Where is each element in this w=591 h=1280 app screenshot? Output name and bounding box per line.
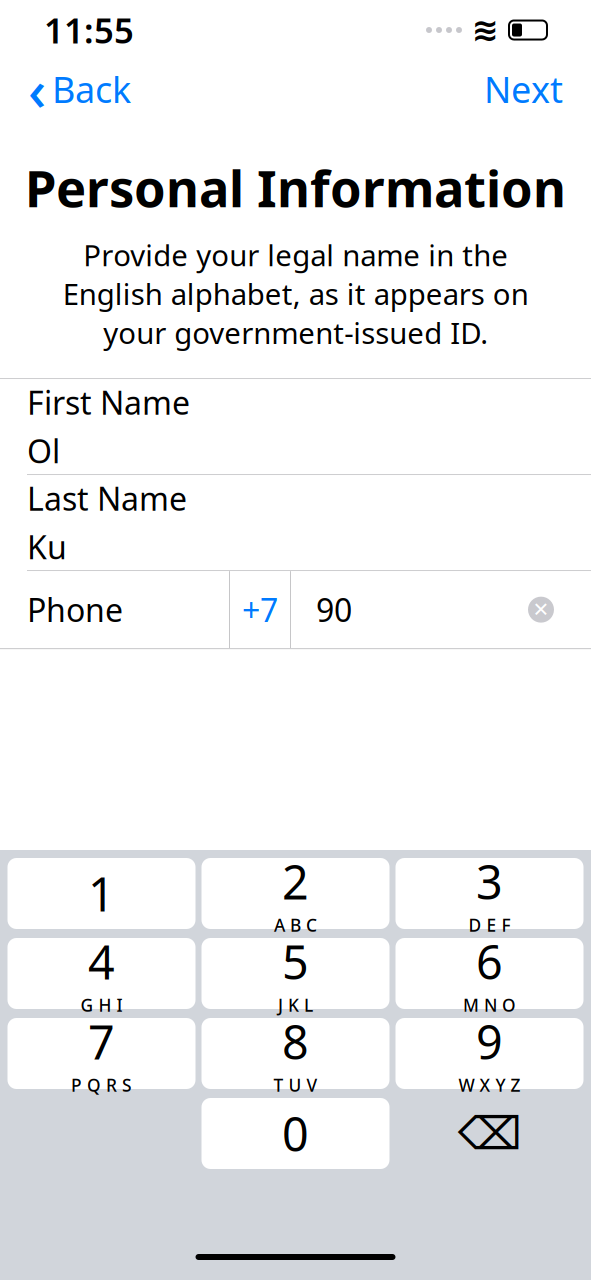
staticText: 5: [282, 930, 309, 992]
staticText: 1: [88, 862, 115, 924]
staticText: Ol: [27, 430, 60, 472]
staticText: T U V: [273, 1073, 317, 1096]
button[interactable]: 7: [7, 1018, 195, 1089]
staticText: 3: [476, 850, 503, 912]
button[interactable]: 8: [201, 1018, 389, 1089]
button[interactable]: 3: [395, 858, 583, 929]
staticText: Ku: [27, 526, 67, 568]
button[interactable]: 0: [201, 1098, 389, 1169]
staticText: M N O: [463, 993, 516, 1016]
staticText: Personal Information: [25, 154, 566, 221]
staticText: ≋: [472, 12, 499, 48]
button[interactable]: 1: [7, 858, 195, 929]
button[interactable]: ‹: [12, 46, 147, 132]
staticText: G H I: [80, 993, 122, 1016]
button[interactable]: Delete: [395, 1098, 583, 1169]
staticText: 90: [316, 588, 352, 631]
staticText: Last Name: [27, 477, 187, 520]
staticText: 9: [476, 1010, 503, 1072]
staticText: P Q R S: [71, 1073, 132, 1096]
staticText: Back: [52, 65, 131, 113]
button[interactable]: Last Name: [0, 475, 591, 570]
staticText: A B C: [274, 913, 317, 936]
staticText: 0: [282, 1102, 309, 1164]
button[interactable]: 5: [201, 938, 389, 1009]
button[interactable]: First Name: [0, 379, 591, 474]
staticText: 8: [282, 1010, 309, 1072]
button[interactable]: +7: [230, 571, 290, 648]
button[interactable]: 4: [7, 938, 195, 1009]
staticText: W X Y Z: [458, 1073, 520, 1096]
staticText: +7: [242, 588, 278, 631]
staticText: First Name: [27, 381, 190, 424]
staticText: Provide your legal name in the English a…: [62, 235, 528, 352]
staticText: ⌫: [457, 1108, 521, 1159]
staticText: 11:55: [44, 7, 134, 53]
button[interactable]: Next: [468, 59, 579, 119]
staticText: 6: [476, 930, 503, 992]
staticText: J K L: [278, 993, 313, 1016]
staticText: Phone: [27, 588, 123, 631]
staticText: ‹: [28, 52, 46, 126]
button[interactable]: Phone: [0, 571, 229, 648]
staticText: D E F: [468, 913, 510, 936]
button[interactable]: 2: [201, 858, 389, 929]
staticText: 7: [88, 1010, 115, 1072]
staticText: 4: [88, 930, 115, 992]
staticText: Next: [484, 65, 563, 113]
button[interactable]: 6: [395, 938, 583, 1009]
button[interactable]: Clear phone number: [291, 571, 591, 648]
staticText: ✕: [532, 598, 549, 621]
staticText: 2: [282, 850, 309, 912]
button[interactable]: 9: [395, 1018, 583, 1089]
